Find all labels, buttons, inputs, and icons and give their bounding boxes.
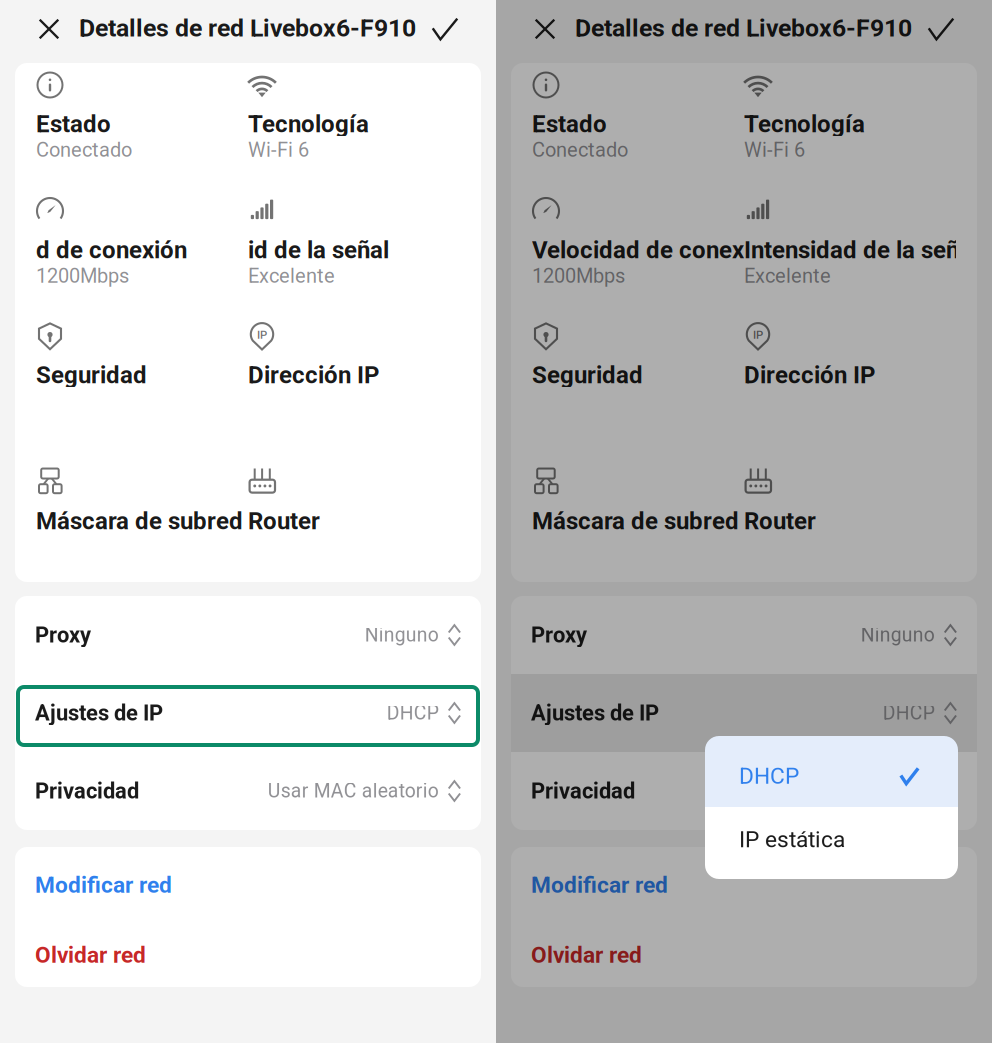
- staticText: Conectado: [532, 138, 628, 162]
- staticText: Máscara de subred: [532, 507, 739, 535]
- staticText: Wi-Fi 6: [744, 138, 805, 162]
- staticText: Seguridad: [36, 361, 147, 389]
- button[interactable]: Guardar: [423, 7, 467, 51]
- staticText: Detalles de red Livebox6-F910: [79, 13, 416, 43]
- staticText: 1200Mbps: [36, 264, 129, 288]
- staticText: Ninguno: [861, 624, 935, 646]
- button[interactable]: Ajustes de IP: [511, 674, 977, 752]
- staticText: IP: [257, 328, 267, 341]
- button[interactable]: Guardar: [919, 7, 963, 51]
- staticText: DHCP: [739, 763, 799, 789]
- staticText: Proxy: [35, 622, 91, 648]
- staticText: Ninguno: [365, 624, 439, 646]
- staticText: Usar MAC aleatorio: [764, 780, 935, 802]
- staticText: Privacidad: [531, 778, 635, 804]
- staticText: DHCP: [883, 702, 935, 724]
- staticText: Tecnología: [744, 110, 865, 138]
- staticText: 1200Mbps: [532, 264, 625, 288]
- staticText: Excelente: [744, 264, 831, 288]
- button[interactable]: Privacidad: [511, 752, 977, 830]
- staticText: IP: [753, 328, 763, 341]
- staticText: Estado: [36, 110, 111, 138]
- button[interactable]: Proxy: [15, 596, 481, 674]
- button[interactable]: Modificar red: [511, 847, 977, 917]
- staticText: Usar MAC aleatorio: [268, 780, 439, 802]
- staticText: Intensidad de la señal: [744, 236, 978, 264]
- button[interactable]: Privacidad: [15, 752, 481, 830]
- staticText: Ajustes de IP: [531, 700, 659, 726]
- staticText: Conectado: [36, 138, 132, 162]
- staticText: d de conexión: [36, 236, 187, 264]
- staticText: Detalles de red Livebox6-F910: [575, 13, 912, 43]
- staticText: Proxy: [531, 622, 587, 648]
- staticText: Excelente: [248, 264, 335, 288]
- button[interactable]: Ajustes de IP: [15, 674, 481, 752]
- staticText: Modificar red: [35, 872, 172, 898]
- staticText: Seguridad: [532, 361, 643, 389]
- staticText: Router: [248, 507, 320, 535]
- staticText: Olvidar red: [35, 942, 146, 968]
- staticText: Modificar red: [531, 872, 668, 898]
- staticText: Privacidad: [35, 778, 139, 804]
- button[interactable]: Proxy: [511, 596, 977, 674]
- staticText: Tecnología: [248, 110, 369, 138]
- staticText: Dirección IP: [744, 361, 875, 389]
- button[interactable]: Modificar red: [15, 847, 481, 917]
- button[interactable]: Cerrar: [523, 7, 567, 51]
- button[interactable]: Olvidar red: [511, 917, 977, 987]
- staticText: Dirección IP: [248, 361, 379, 389]
- staticText: Wi-Fi 6: [248, 138, 309, 162]
- button[interactable]: Cerrar: [27, 7, 71, 51]
- staticText: DHCP: [387, 702, 439, 724]
- button[interactable]: Olvidar red: [15, 917, 481, 987]
- staticText: Estado: [532, 110, 607, 138]
- staticText: Ajustes de IP: [35, 700, 163, 726]
- staticText: id de la señal: [248, 236, 389, 264]
- staticText: Olvidar red: [531, 942, 642, 968]
- button[interactable]: IP estática: [705, 807, 958, 879]
- staticText: Router: [744, 507, 816, 535]
- staticText: IP estática: [739, 826, 845, 853]
- button[interactable]: DHCP: [705, 736, 958, 807]
- staticText: Máscara de subred: [36, 507, 243, 535]
- staticText: Velocidad de conexión: [532, 236, 777, 264]
